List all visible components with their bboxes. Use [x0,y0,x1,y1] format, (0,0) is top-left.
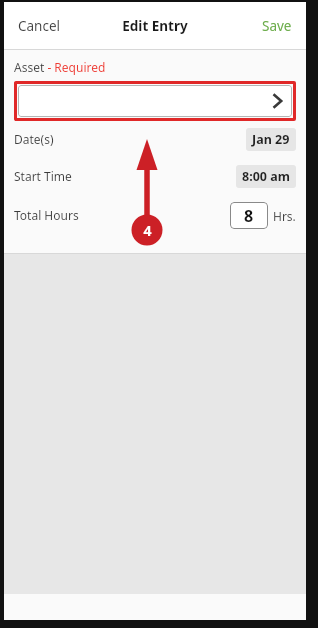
staticText: Edit Entry [122,17,188,35]
staticText: Date(s) [14,131,54,147]
staticText: Start Time [14,168,72,184]
button[interactable]: Cancel [12,11,67,41]
button[interactable]: Start Time [4,157,306,195]
staticText: 8 [244,205,254,227]
staticText: Cancel [18,17,61,35]
button[interactable]: Select asset [18,85,292,117]
button[interactable]: Date(s) [4,121,306,157]
staticText: 8:00 am [242,168,290,185]
button[interactable]: 8 [230,202,268,229]
staticText: Jan 29 [252,131,290,148]
button[interactable]: Save [256,11,298,41]
staticText: Asset - Required [14,59,106,75]
staticText: Save [262,17,292,35]
staticText: Hrs. [273,208,296,224]
button[interactable]: Total Hours [4,195,306,235]
staticText: 4 [143,221,152,240]
staticText: Total Hours [14,207,79,223]
